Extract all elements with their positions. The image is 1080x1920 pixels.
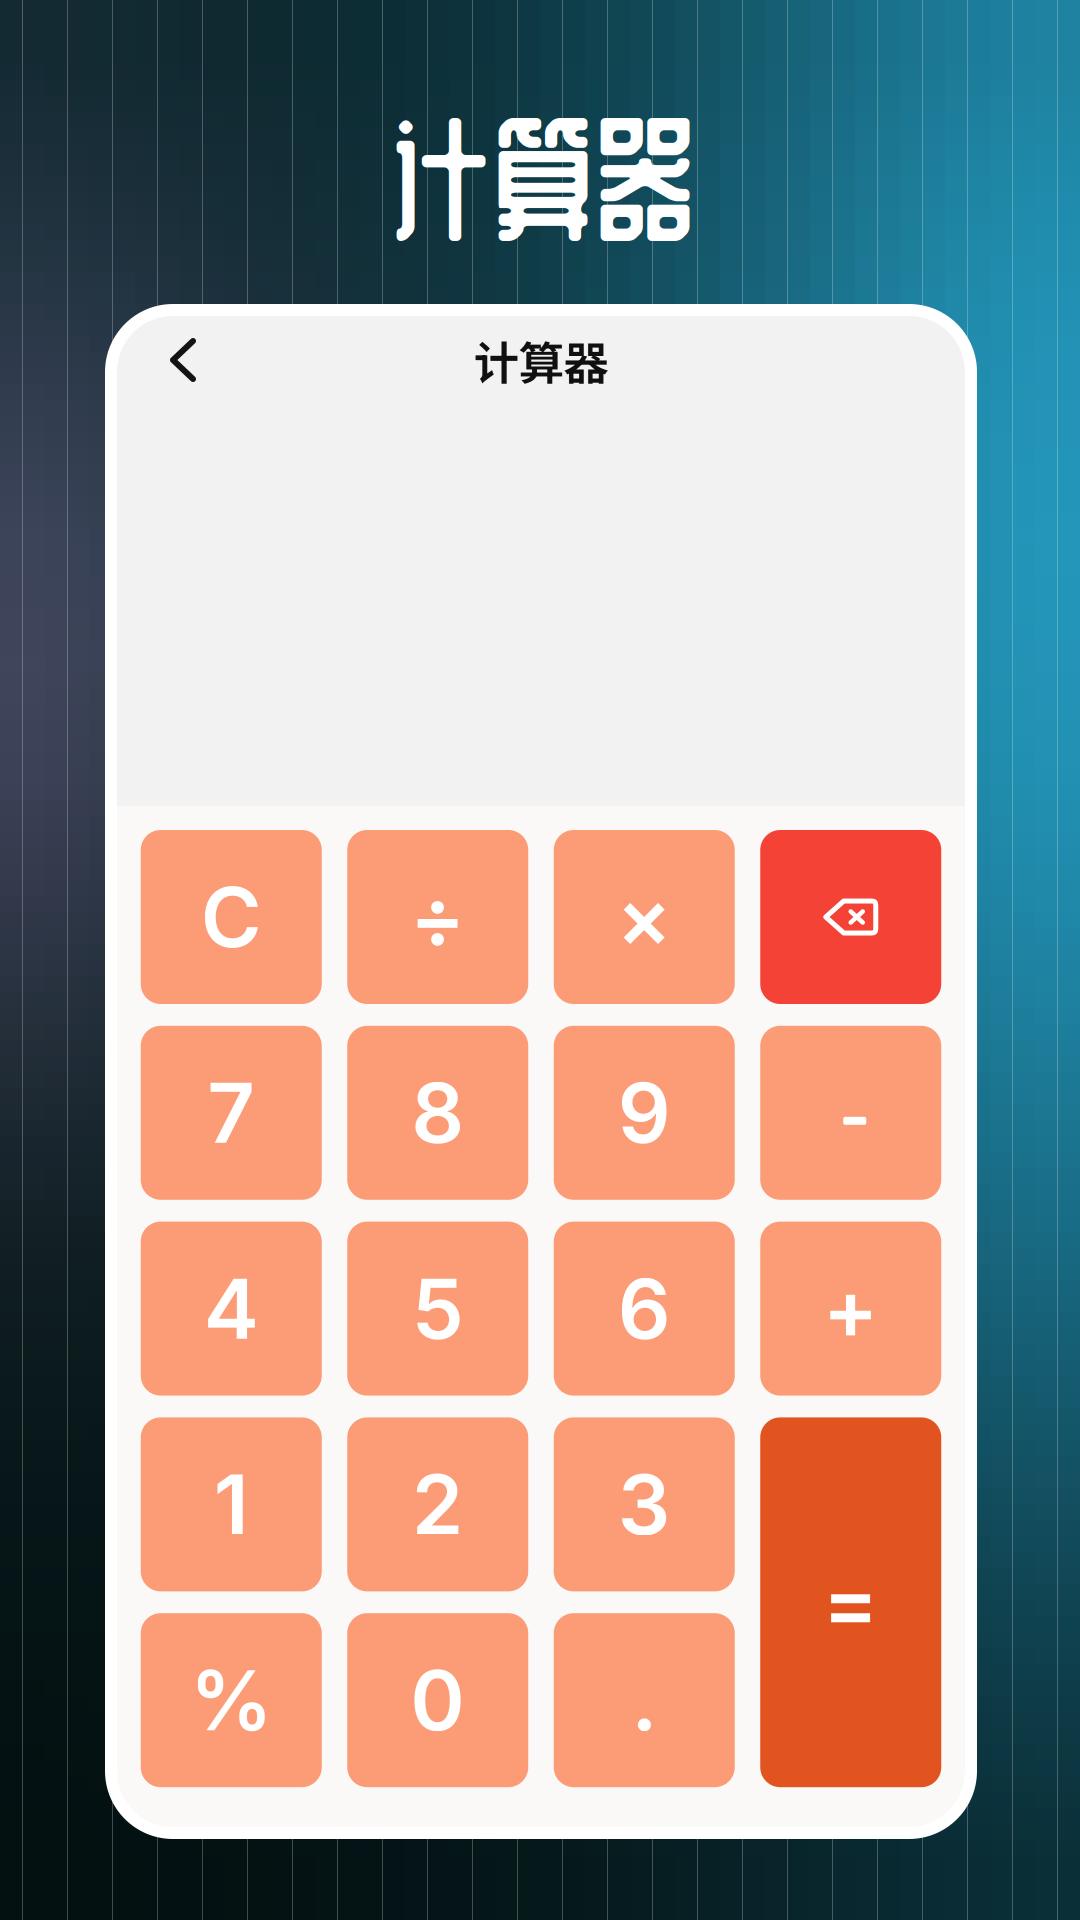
button[interactable]: + <box>760 1222 941 1396</box>
staticText: + <box>823 1259 879 1359</box>
button[interactable]: . <box>554 1613 735 1787</box>
button[interactable]: 3 <box>554 1417 735 1591</box>
button[interactable]: 2 <box>347 1417 528 1591</box>
staticText: . <box>631 1650 657 1750</box>
button[interactable] <box>760 1026 941 1200</box>
staticText: C <box>201 867 262 967</box>
staticText: ÷ <box>410 867 466 967</box>
button[interactable]: C <box>141 830 322 1004</box>
button[interactable]: 9 <box>554 1026 735 1200</box>
staticText: 6 <box>618 1259 671 1359</box>
button[interactable]: 7 <box>141 1026 322 1200</box>
staticText: 7 <box>207 1063 255 1163</box>
button[interactable]: × <box>554 830 735 1004</box>
button[interactable]: 6 <box>554 1222 735 1396</box>
staticText: 1 <box>214 1454 249 1554</box>
button[interactable]: 4 <box>141 1222 322 1396</box>
staticText: 2 <box>412 1454 464 1554</box>
button[interactable]: Back <box>143 324 215 396</box>
staticText: = <box>823 1552 879 1652</box>
staticText: 3 <box>618 1454 671 1554</box>
staticText: 8 <box>411 1063 464 1163</box>
staticText: × <box>616 867 672 967</box>
button[interactable]: 1 <box>141 1417 322 1591</box>
button[interactable]: 5 <box>347 1222 528 1396</box>
button[interactable]: % <box>141 1613 322 1787</box>
button[interactable]: = <box>760 1417 941 1787</box>
staticText: 9 <box>618 1063 671 1163</box>
staticText: 计算器 <box>390 101 696 258</box>
staticText: 5 <box>412 1259 464 1359</box>
staticText: 0 <box>410 1650 465 1750</box>
button[interactable] <box>760 830 941 1004</box>
staticText: 计算器 <box>473 327 608 393</box>
button[interactable]: ÷ <box>347 830 528 1004</box>
button[interactable]: 8 <box>347 1026 528 1200</box>
button[interactable]: 0 <box>347 1613 528 1787</box>
staticText: % <box>190 1650 273 1750</box>
staticText: 4 <box>204 1259 259 1359</box>
